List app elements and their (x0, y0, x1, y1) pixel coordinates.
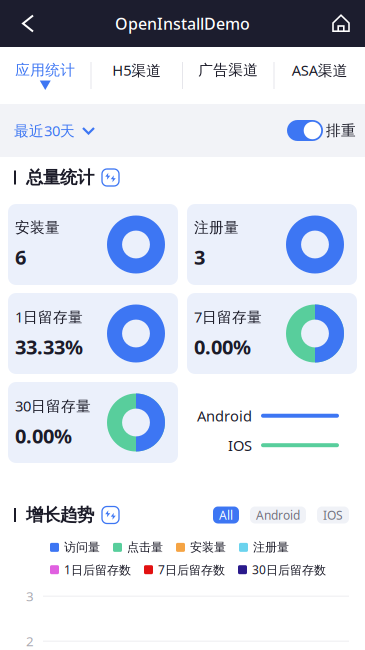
button[interactable]: H5渠道 (91, 47, 182, 104)
staticText: H5渠道 (112, 60, 161, 80)
staticText: 0.00% (15, 422, 72, 449)
staticText: 点击量 (127, 540, 163, 555)
staticText: 应用统计 (15, 61, 75, 79)
staticText: 2 (26, 632, 34, 650)
button[interactable]: 排重 (277, 104, 365, 157)
staticText: 增长趋势 (26, 504, 94, 526)
staticText: 注册量 (194, 219, 239, 237)
button[interactable]: 最近30天 (0, 104, 105, 157)
staticText: 安装量 (15, 219, 60, 237)
staticText: 1日留存量 (15, 307, 83, 326)
staticText: 访问量 (64, 540, 100, 555)
staticText: 7日留存量 (194, 307, 262, 326)
staticText: 0.00% (194, 333, 251, 360)
staticText: ASA渠道 (292, 60, 348, 80)
button[interactable]: Home (322, 0, 365, 47)
staticText: 总量统计 (26, 167, 94, 188)
staticText: 33.33% (15, 333, 83, 360)
staticText: 30日后留存数 (252, 562, 326, 578)
button[interactable]: All (213, 506, 239, 523)
button[interactable]: Android (250, 506, 306, 523)
button[interactable]: 应用统计 (0, 47, 90, 104)
staticText: 最近30天 (14, 121, 75, 140)
button[interactable]: IOS (317, 506, 349, 523)
staticText: 3 (26, 587, 34, 605)
staticText: 排重 (326, 121, 356, 139)
button[interactable]: ASA渠道 (274, 47, 365, 104)
staticText: 7日后留存数 (158, 562, 225, 578)
staticText: Android (197, 406, 252, 425)
staticText: 1日后留存数 (64, 562, 131, 578)
staticText: 3 (194, 244, 205, 270)
staticText: IOS (228, 435, 252, 455)
staticText: 6 (15, 244, 26, 270)
staticText: IOS (323, 507, 343, 523)
staticText: All (219, 507, 233, 523)
staticText: 安装量 (190, 540, 226, 555)
button[interactable]: 广告渠道 (183, 47, 273, 104)
staticText: OpenInstallDemo (115, 13, 250, 34)
staticText: Android (256, 507, 300, 523)
button[interactable]: Back (0, 0, 44, 47)
staticText: 30日留存量 (15, 396, 91, 415)
staticText: 注册量 (253, 540, 289, 555)
staticText: 广告渠道 (198, 61, 258, 79)
